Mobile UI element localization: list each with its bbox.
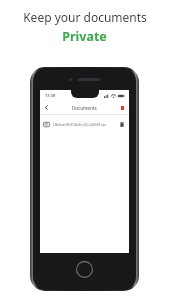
button[interactable]: Delete all <box>118 104 126 112</box>
button[interactable]: Home <box>76 261 93 278</box>
staticText: Private <box>62 28 107 45</box>
staticText: Keep your documents <box>23 9 147 25</box>
button[interactable]: Delete <box>118 120 126 128</box>
button[interactable]: Back <box>42 103 51 112</box>
staticText: LBdbsnIHHCkb8crJQuiQ8cN.zip <box>53 122 116 127</box>
button[interactable]: LBdbsnIHHCkb8crJQuiQ8cN.zip <box>40 115 129 133</box>
staticText: 17:39 <box>45 93 56 98</box>
staticText: Documents <box>72 105 97 111</box>
